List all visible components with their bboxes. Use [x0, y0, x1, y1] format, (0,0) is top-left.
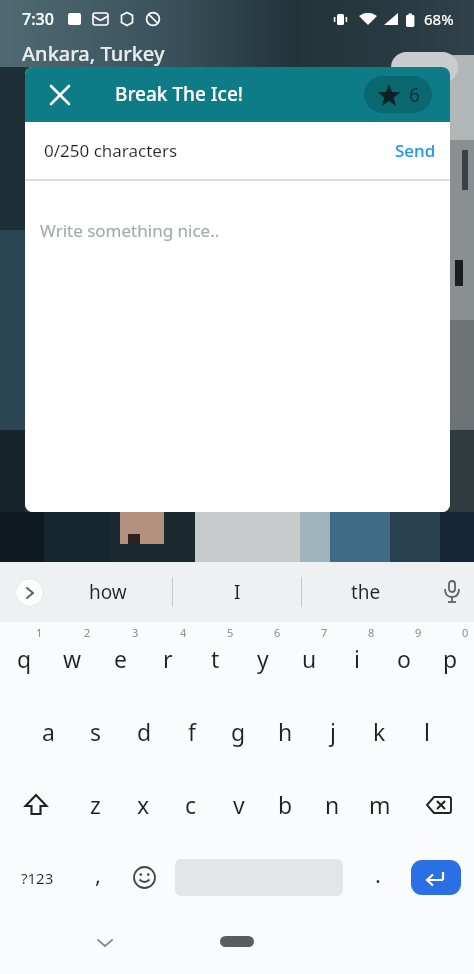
staticText: I: [234, 579, 241, 605]
staticText: s: [90, 716, 102, 747]
staticText: ,: [95, 859, 101, 889]
staticText: x: [137, 789, 150, 820]
button[interactable]: .: [355, 841, 400, 914]
button[interactable]: j: [309, 695, 356, 768]
button[interactable]: z: [71, 768, 119, 841]
staticText: ?123: [21, 868, 54, 888]
staticText: 4: [180, 625, 187, 640]
button[interactable]: 8: [333, 622, 380, 695]
staticText: 9: [415, 625, 422, 640]
staticText: Write something nice..: [40, 219, 220, 242]
button[interactable]: c: [167, 768, 215, 841]
staticText: i: [354, 643, 360, 674]
button[interactable]: g: [215, 695, 262, 768]
button[interactable]: [15, 578, 44, 607]
staticText: r: [163, 643, 173, 674]
button[interactable]: 5: [192, 622, 239, 695]
button[interactable]: s: [72, 695, 120, 768]
staticText: c: [185, 789, 197, 820]
button[interactable]: 9: [380, 622, 427, 695]
button[interactable]: [0, 768, 71, 841]
staticText: p: [443, 643, 458, 674]
staticText: 0/250 characters: [44, 139, 178, 162]
button[interactable]: m: [356, 768, 403, 841]
staticText: 68%: [424, 9, 454, 29]
button[interactable]: Send: [387, 131, 444, 170]
staticText: 2: [84, 625, 91, 640]
button[interactable]: v: [215, 768, 262, 841]
button[interactable]: l: [403, 695, 450, 768]
staticText: 5: [227, 625, 234, 640]
button[interactable]: b: [262, 768, 309, 841]
staticText: h: [278, 716, 293, 747]
button[interactable]: [411, 860, 461, 895]
button[interactable]: ?123: [0, 841, 75, 914]
button[interactable]: [220, 936, 254, 947]
staticText: 0: [462, 625, 469, 640]
button[interactable]: the: [302, 562, 430, 622]
staticText: how: [89, 579, 127, 605]
staticText: a: [42, 716, 55, 747]
button[interactable]: d: [120, 695, 168, 768]
staticText: 6: [409, 82, 420, 108]
button[interactable]: [403, 768, 474, 841]
staticText: k: [373, 716, 386, 747]
button[interactable]: [46, 81, 74, 109]
staticText: l: [424, 716, 430, 747]
button[interactable]: 6: [364, 76, 432, 113]
button[interactable]: n: [309, 768, 356, 841]
staticText: q: [17, 643, 32, 674]
staticText: 7: [321, 625, 328, 640]
staticText: t: [211, 643, 220, 674]
staticText: u: [302, 643, 317, 674]
button[interactable]: 0: [427, 622, 474, 695]
button[interactable]: 1: [0, 622, 48, 695]
staticText: 7:30: [22, 8, 54, 30]
staticText: 3: [132, 625, 139, 640]
staticText: Send: [395, 139, 436, 162]
button[interactable]: how: [44, 562, 172, 622]
button[interactable]: Write something nice..: [25, 181, 450, 512]
button[interactable]: 4: [144, 622, 192, 695]
button[interactable]: 2: [48, 622, 96, 695]
button[interactable]: [430, 562, 474, 622]
button[interactable]: f: [168, 695, 215, 768]
button[interactable]: 6: [239, 622, 286, 695]
staticText: d: [137, 716, 152, 747]
staticText: w: [63, 643, 82, 674]
button[interactable]: ,: [75, 841, 120, 914]
staticText: Break The Ice!: [115, 81, 244, 107]
button[interactable]: h: [262, 695, 309, 768]
staticText: .: [375, 859, 381, 889]
staticText: m: [369, 789, 391, 820]
staticText: e: [114, 643, 127, 674]
staticText: g: [231, 716, 246, 747]
staticText: o: [397, 643, 411, 674]
staticText: 8: [368, 625, 375, 640]
staticText: y: [257, 643, 269, 674]
staticText: v: [233, 789, 245, 820]
button[interactable]: a: [24, 695, 72, 768]
staticText: 6: [274, 625, 281, 640]
staticText: 1: [36, 625, 43, 640]
button[interactable]: x: [119, 768, 167, 841]
staticText: z: [90, 789, 101, 820]
button[interactable]: I: [173, 562, 301, 622]
staticText: Ankara, Turkey: [22, 40, 165, 67]
staticText: the: [351, 579, 381, 605]
staticText: f: [188, 716, 196, 747]
staticText: j: [330, 716, 336, 747]
button[interactable]: 7: [286, 622, 333, 695]
button[interactable]: [120, 841, 168, 914]
staticText: n: [325, 789, 340, 820]
button[interactable]: k: [356, 695, 403, 768]
staticText: b: [278, 789, 293, 820]
button[interactable]: 3: [96, 622, 144, 695]
